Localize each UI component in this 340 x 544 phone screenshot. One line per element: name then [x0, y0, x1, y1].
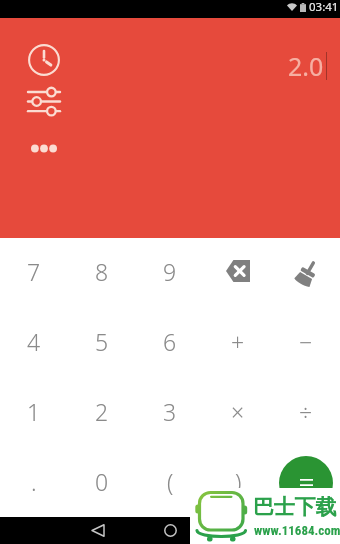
button[interactable]: .	[0, 448, 68, 518]
staticText: +	[231, 326, 245, 357]
staticText: 9	[163, 256, 177, 287]
button[interactable]: Backspace	[204, 238, 272, 308]
button[interactable]: Equals	[279, 456, 333, 510]
button[interactable]: ÷	[272, 378, 340, 448]
staticText: 6	[163, 326, 177, 357]
staticText: www.11684.com	[254, 523, 340, 538]
staticText: 4	[27, 326, 41, 357]
button[interactable]: )	[204, 448, 272, 518]
staticText: ×	[231, 396, 245, 427]
button[interactable]: History	[23, 39, 64, 80]
button[interactable]: Equals	[272, 448, 340, 518]
button[interactable]: 8	[68, 238, 136, 308]
button[interactable]: +	[204, 308, 272, 378]
button[interactable]: 0	[68, 448, 136, 518]
staticText: −	[299, 326, 313, 357]
staticText: 0	[95, 466, 109, 497]
staticText: )	[235, 466, 242, 497]
staticText: ÷	[299, 396, 313, 427]
staticText: (	[167, 466, 174, 497]
button[interactable]: ×	[204, 378, 272, 448]
button[interactable]: Back	[87, 517, 109, 544]
staticText: 3	[163, 396, 177, 427]
other: Clear	[295, 260, 318, 287]
staticText: 7	[27, 256, 41, 287]
staticText: 2	[95, 396, 109, 427]
button[interactable]: 1	[0, 378, 68, 448]
staticText: .	[31, 466, 37, 497]
button[interactable]: −	[272, 308, 340, 378]
button[interactable]: Home	[159, 517, 181, 544]
button[interactable]: 7	[0, 238, 68, 308]
button[interactable]: Clear	[272, 238, 340, 308]
staticText: 8	[95, 256, 109, 287]
button[interactable]: Settings	[23, 87, 65, 116]
staticText: 1	[27, 396, 41, 427]
staticText: 2.0	[288, 49, 324, 83]
button[interactable]: More options	[25, 133, 63, 163]
button[interactable]: 2	[68, 378, 136, 448]
staticText: 03:41	[309, 0, 339, 15]
button[interactable]: 6	[136, 308, 204, 378]
button[interactable]: 5	[68, 308, 136, 378]
button[interactable]: (	[136, 448, 204, 518]
staticText: 巴士下载	[253, 494, 337, 520]
button[interactable]: 4	[0, 308, 68, 378]
button[interactable]: 3	[136, 378, 204, 448]
other: Backspace	[226, 262, 250, 284]
button[interactable]: 9	[136, 238, 204, 308]
staticText: 5	[95, 326, 109, 357]
